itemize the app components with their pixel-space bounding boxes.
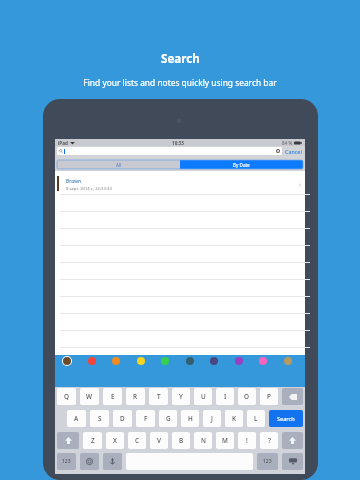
staticText: All xyxy=(116,162,122,168)
staticText: Search xyxy=(277,415,295,423)
button[interactable]: Q xyxy=(57,388,76,405)
staticText: iPad xyxy=(58,140,68,146)
button[interactable]: E xyxy=(103,388,122,405)
button[interactable]: Clear search xyxy=(57,147,282,155)
staticText: A xyxy=(74,414,79,423)
staticText: W xyxy=(86,392,93,401)
staticText: 123 xyxy=(263,458,272,465)
button[interactable]: Brown xyxy=(55,175,305,194)
staticText: J xyxy=(211,414,213,423)
button[interactable]: I xyxy=(216,388,234,405)
button[interactable]: M xyxy=(216,432,234,449)
button[interactable]: Colour 4 xyxy=(161,357,169,365)
button[interactable]: Dictate xyxy=(103,453,122,470)
button[interactable]: N xyxy=(194,432,212,449)
button[interactable]: Colour 6 xyxy=(210,357,218,365)
button[interactable]: S xyxy=(90,410,109,427)
button[interactable]: V xyxy=(150,432,168,449)
button[interactable]: T xyxy=(149,388,168,405)
button[interactable]: Colour 7 xyxy=(235,357,243,365)
button[interactable]: Search xyxy=(269,410,303,427)
staticText: S xyxy=(98,414,102,423)
button[interactable]: K xyxy=(225,410,243,427)
staticText: ! xyxy=(246,436,248,445)
button[interactable]: Shift xyxy=(57,432,79,449)
button[interactable]: U xyxy=(194,388,212,405)
button[interactable]: W xyxy=(80,388,99,405)
staticText: E xyxy=(111,392,115,401)
button[interactable]: A xyxy=(67,410,86,427)
staticText: N xyxy=(201,436,206,445)
button[interactable]: G xyxy=(159,410,177,427)
button[interactable]: Colour 1 xyxy=(88,357,96,365)
staticText: K xyxy=(232,414,237,423)
staticText: O xyxy=(244,392,250,401)
staticText: Find your lists and notes quickly using … xyxy=(83,77,277,88)
button[interactable]: Clear search xyxy=(276,149,280,153)
button[interactable]: C xyxy=(128,432,146,449)
button[interactable]: Brown colour, selected xyxy=(62,356,72,366)
button[interactable]: Numbers xyxy=(57,453,76,470)
button[interactable]: Numbers xyxy=(257,453,278,470)
staticText: L xyxy=(254,414,258,423)
staticText: P xyxy=(267,392,271,401)
button[interactable]: P xyxy=(260,388,278,405)
staticText: F xyxy=(144,414,148,423)
staticText: V xyxy=(157,436,161,445)
button[interactable]: ? xyxy=(260,432,278,449)
staticText: By Date xyxy=(233,162,250,168)
staticText: D xyxy=(120,414,125,423)
button[interactable]: ! xyxy=(238,432,256,449)
staticText: Search xyxy=(161,51,200,67)
staticText: ? xyxy=(268,436,271,445)
staticText: Brown xyxy=(66,178,82,185)
staticText: G xyxy=(166,414,171,423)
button[interactable]: X xyxy=(106,432,124,449)
button[interactable]: Colour 8 xyxy=(259,357,267,365)
button[interactable]: H xyxy=(181,410,199,427)
button[interactable]: B xyxy=(172,432,190,449)
button[interactable]: Colour 9 xyxy=(284,357,292,365)
staticText: T xyxy=(157,392,161,401)
staticText: Y xyxy=(179,392,183,401)
staticText: C xyxy=(135,436,140,445)
button[interactable]: Backspace xyxy=(282,388,303,405)
button[interactable]: O xyxy=(238,388,256,405)
button[interactable]: Cancel xyxy=(284,148,303,155)
button[interactable]: Colour 3 xyxy=(137,357,145,365)
button[interactable]: Z xyxy=(83,432,102,449)
button[interactable]: Colour 5 xyxy=(186,357,194,365)
staticText: Z xyxy=(91,436,95,445)
button[interactable]: F xyxy=(136,410,155,427)
staticText: Cancel xyxy=(285,148,302,155)
button[interactable]: By Date xyxy=(180,160,303,169)
button[interactable]: Emoji xyxy=(80,453,99,470)
staticText: 84 % xyxy=(282,140,293,146)
button[interactable]: R xyxy=(126,388,145,405)
staticText: Q xyxy=(64,392,70,401)
staticText: 123 xyxy=(62,458,71,465)
button[interactable]: Hide keyboard xyxy=(282,453,303,470)
button[interactable]: J xyxy=(203,410,221,427)
staticText: I xyxy=(224,392,227,401)
button[interactable]: Colour 2 xyxy=(112,357,120,365)
staticText: X xyxy=(113,436,117,445)
staticText: U xyxy=(201,392,206,401)
button[interactable]: L xyxy=(247,410,265,427)
staticText: R xyxy=(133,392,138,401)
staticText: H xyxy=(188,414,193,423)
staticText: 10:33 xyxy=(172,140,184,146)
button[interactable]: Shift xyxy=(282,432,303,449)
button[interactable]: Y xyxy=(172,388,190,405)
staticText: 8 sept. 2014 r., 22:33:33 xyxy=(66,186,112,192)
staticText: M xyxy=(222,436,228,445)
button[interactable]: D xyxy=(113,410,132,427)
staticText: B xyxy=(179,436,184,445)
button[interactable]: All xyxy=(57,160,180,169)
